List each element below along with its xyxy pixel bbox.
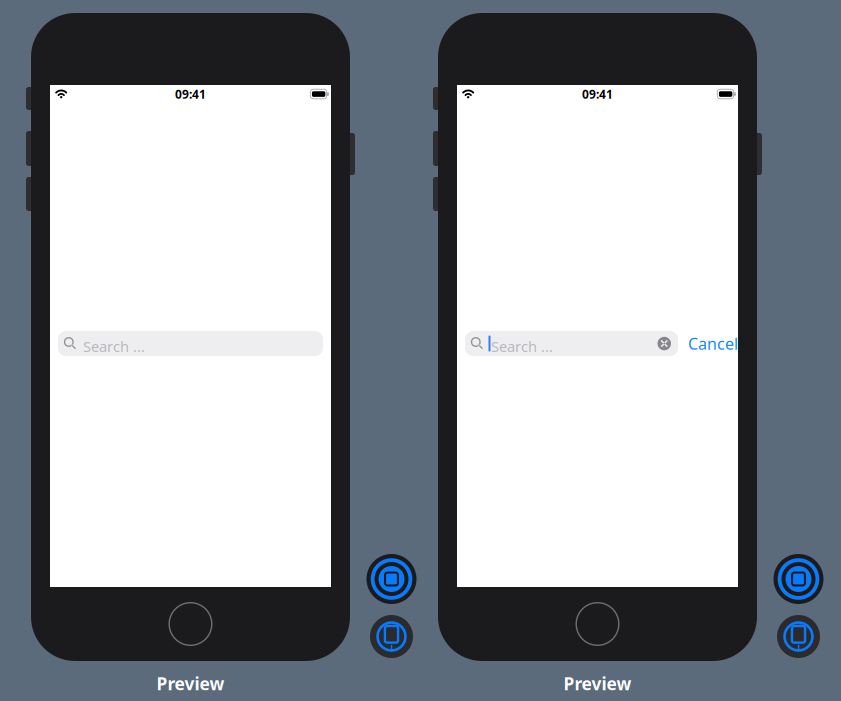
staticText: Preview: [156, 672, 224, 695]
staticText: 09:41: [582, 86, 613, 102]
button[interactable]: Search ...: [465, 331, 678, 356]
staticText: Search ...: [491, 336, 553, 356]
button[interactable]: Preview on device: [370, 615, 413, 658]
button[interactable]: Search ...: [58, 331, 323, 356]
staticText: Search ...: [83, 336, 145, 356]
button[interactable]: Preview on device: [777, 615, 820, 658]
staticText: 09:41: [175, 86, 206, 102]
staticText: Preview: [563, 672, 631, 695]
button[interactable]: Cancel: [688, 331, 738, 356]
button[interactable]: Stop live preview: [366, 554, 416, 604]
button[interactable]: Stop live preview: [773, 554, 823, 604]
staticText: Cancel: [688, 333, 738, 354]
